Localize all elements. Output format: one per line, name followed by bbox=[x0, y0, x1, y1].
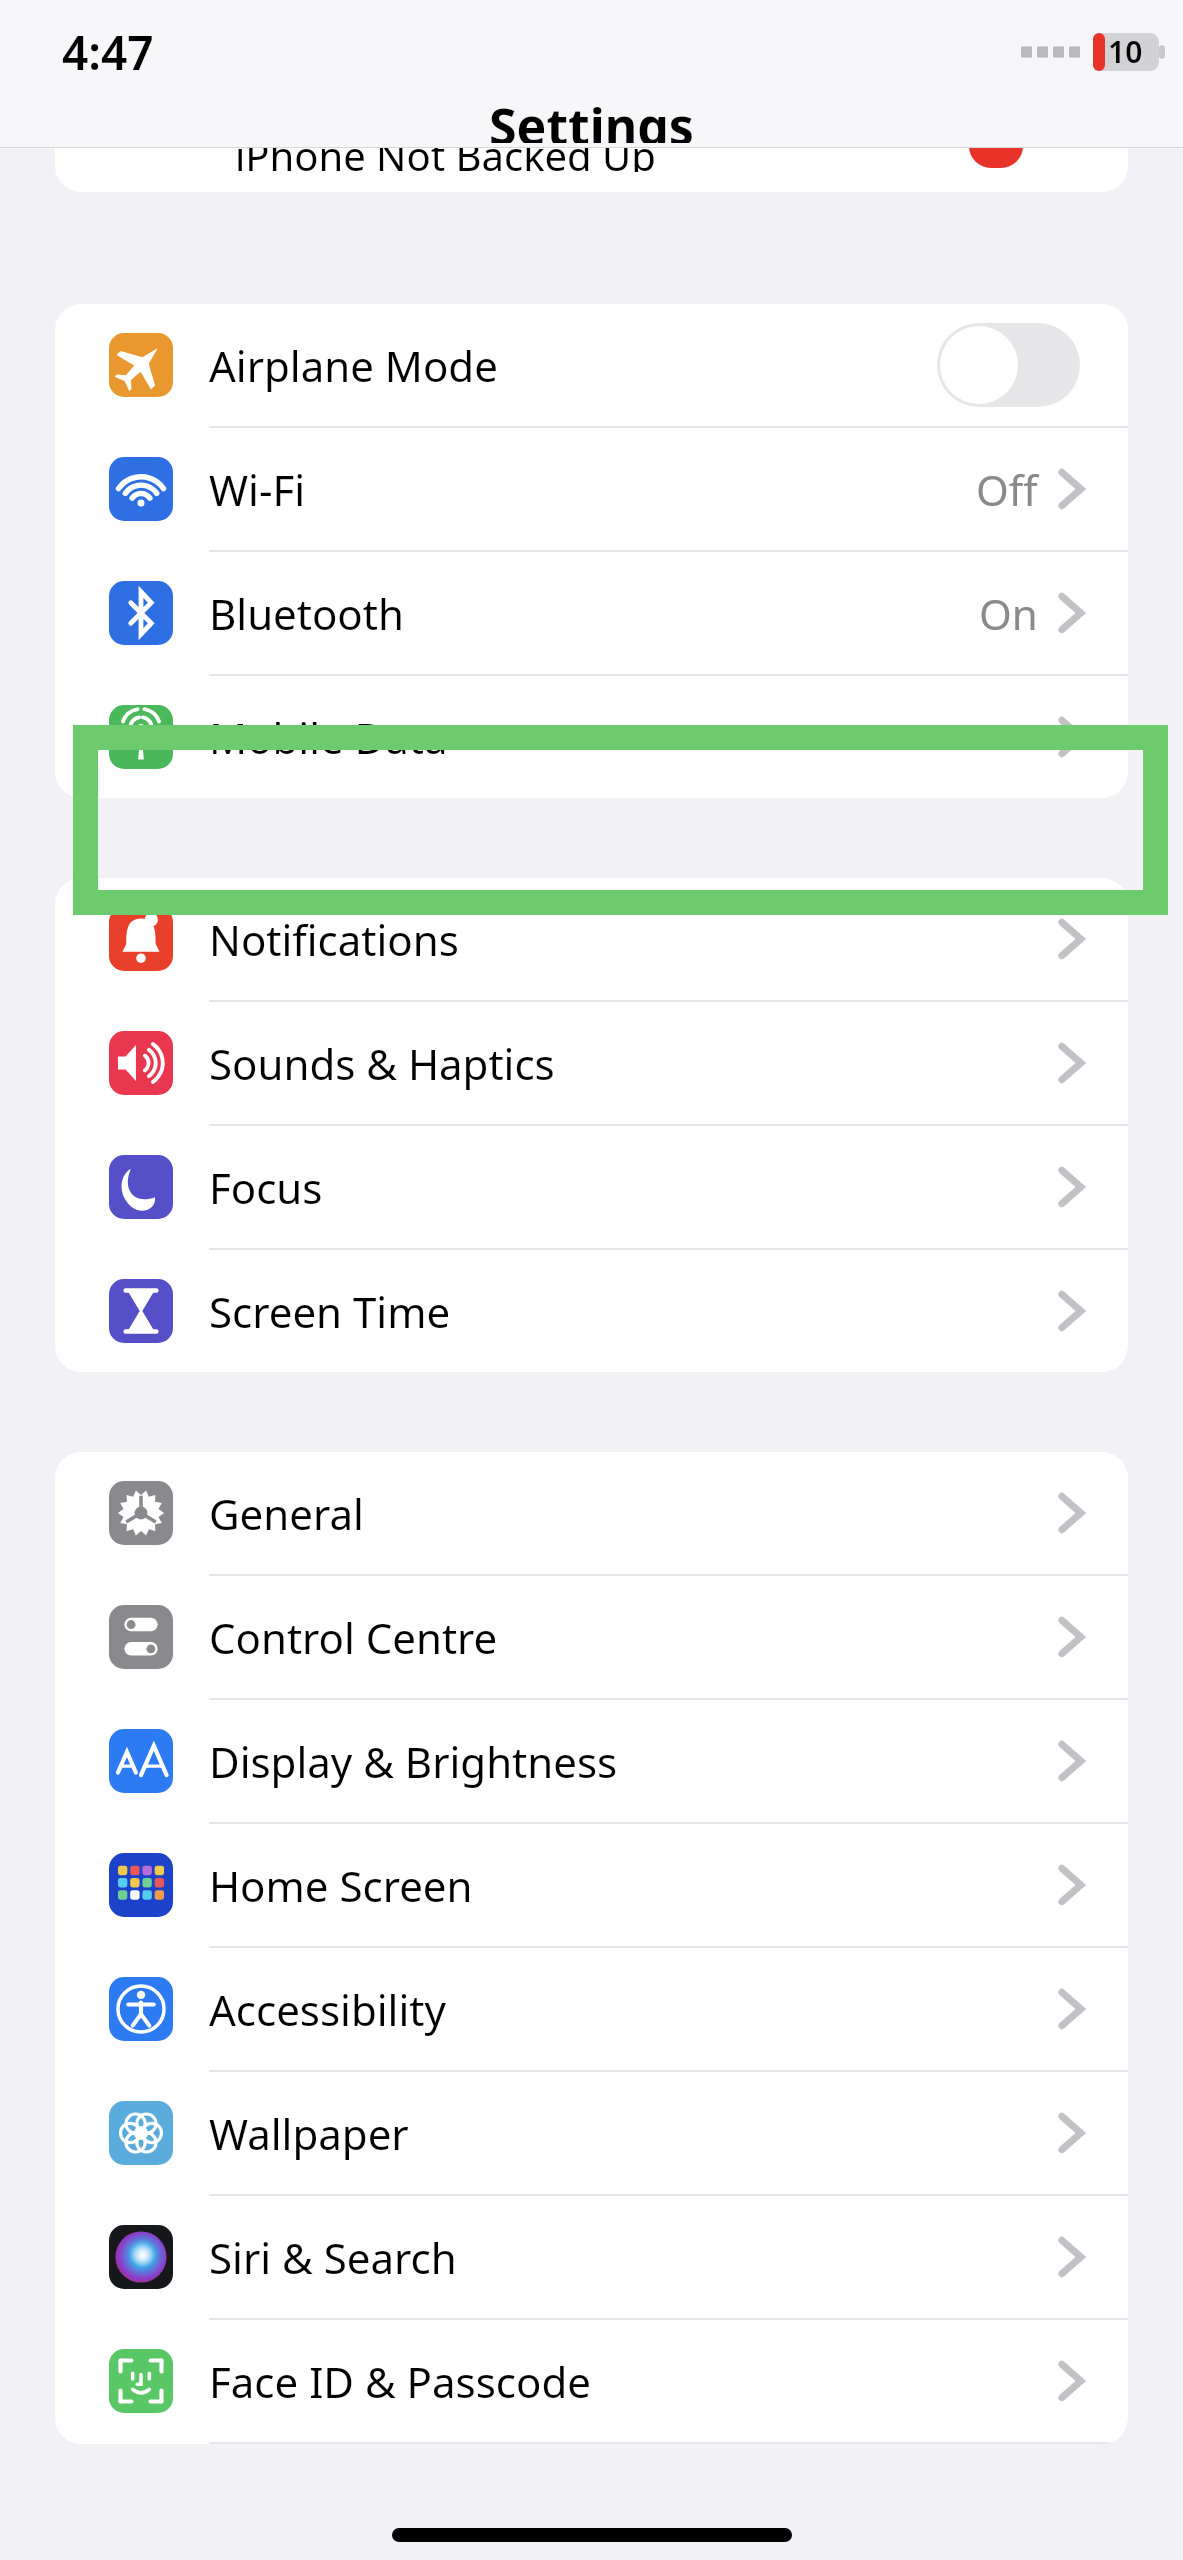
staticText: On bbox=[979, 585, 1038, 642]
staticText: Home Screen bbox=[209, 1857, 1058, 1914]
button[interactable]: Display & Brightness bbox=[55, 1700, 1128, 1822]
staticText: Mobile Data bbox=[209, 709, 1058, 766]
button[interactable]: Wallpaper bbox=[55, 2072, 1128, 2194]
button[interactable]: Face ID & Passcode bbox=[55, 2320, 1128, 2442]
staticText: Settings bbox=[489, 92, 694, 143]
staticText: General bbox=[209, 1485, 1058, 1542]
staticText: Control Centre bbox=[209, 1609, 1058, 1666]
button[interactable]: Control Centre bbox=[55, 1576, 1128, 1698]
button[interactable]: Wi-Fi bbox=[55, 428, 1128, 550]
staticText: 10 bbox=[1108, 31, 1143, 72]
button[interactable]: Bluetooth bbox=[55, 552, 1128, 674]
button[interactable]: Siri & Search bbox=[55, 2196, 1128, 2318]
button[interactable]: Airplane Mode toggle bbox=[937, 323, 1080, 407]
button[interactable]: Airplane Mode bbox=[55, 304, 1128, 426]
staticText: 4:47 bbox=[62, 21, 154, 84]
button[interactable]: Focus bbox=[55, 1126, 1128, 1248]
staticText: Display & Brightness bbox=[209, 1733, 1058, 1790]
button[interactable]: Mobile Data bbox=[55, 676, 1128, 798]
button[interactable]: General bbox=[55, 1452, 1128, 1574]
staticText: Off bbox=[976, 461, 1038, 518]
button[interactable]: Notifications bbox=[55, 878, 1128, 1000]
staticText: iPhone Not Backed Up bbox=[235, 148, 656, 172]
staticText: Wi-Fi bbox=[209, 461, 976, 518]
button[interactable]: Accessibility bbox=[55, 1948, 1128, 2070]
staticText: Airplane Mode bbox=[209, 337, 937, 394]
staticText: Wallpaper bbox=[209, 2105, 1058, 2162]
staticText: Screen Time bbox=[209, 1283, 1058, 1340]
staticText: Face ID & Passcode bbox=[209, 2353, 1058, 2410]
staticText: Accessibility bbox=[209, 1981, 1058, 2038]
staticText: Notifications bbox=[209, 911, 1058, 968]
staticText: Focus bbox=[209, 1159, 1058, 1216]
button[interactable]: Sounds & Haptics bbox=[55, 1002, 1128, 1124]
button[interactable]: Home Screen bbox=[55, 1824, 1128, 1946]
button[interactable]: iPhone Not Backed Up bbox=[55, 148, 1128, 192]
staticText: Siri & Search bbox=[209, 2229, 1058, 2286]
button[interactable]: Screen Time bbox=[55, 1250, 1128, 1372]
staticText: Sounds & Haptics bbox=[209, 1035, 1058, 1092]
staticText: Bluetooth bbox=[209, 585, 979, 642]
